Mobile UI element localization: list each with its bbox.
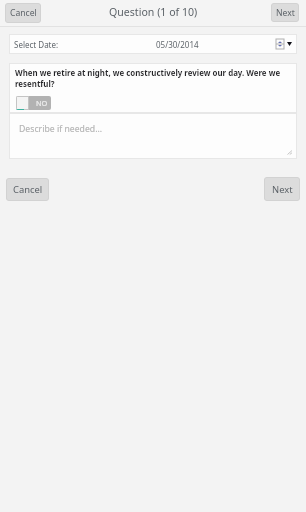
button[interactable]: Next	[264, 177, 300, 201]
other: Date spinner	[276, 39, 284, 49]
button[interactable]: NO	[16, 96, 51, 110]
staticText: Next	[272, 183, 293, 196]
button[interactable]: Select Date:	[9, 34, 297, 54]
button[interactable]: Cancel	[6, 178, 49, 201]
staticText: When we retire at night, we constructive…	[15, 68, 288, 90]
button[interactable]: Cancel	[5, 3, 41, 23]
button[interactable]: Next	[271, 3, 299, 22]
staticText: Next	[276, 7, 295, 19]
button[interactable]: Open date picker	[284, 36, 295, 51]
staticText: Cancel	[13, 183, 43, 196]
button[interactable]: Describe if needed...	[9, 113, 297, 159]
staticText: Select Date:	[14, 39, 59, 50]
staticText: Describe if needed...	[19, 123, 103, 135]
staticText: Cancel	[10, 7, 37, 19]
staticText: NO	[36, 98, 48, 108]
staticText: Question (1 of 10)	[109, 5, 198, 19]
staticText: 05/30/2014	[156, 39, 199, 50]
